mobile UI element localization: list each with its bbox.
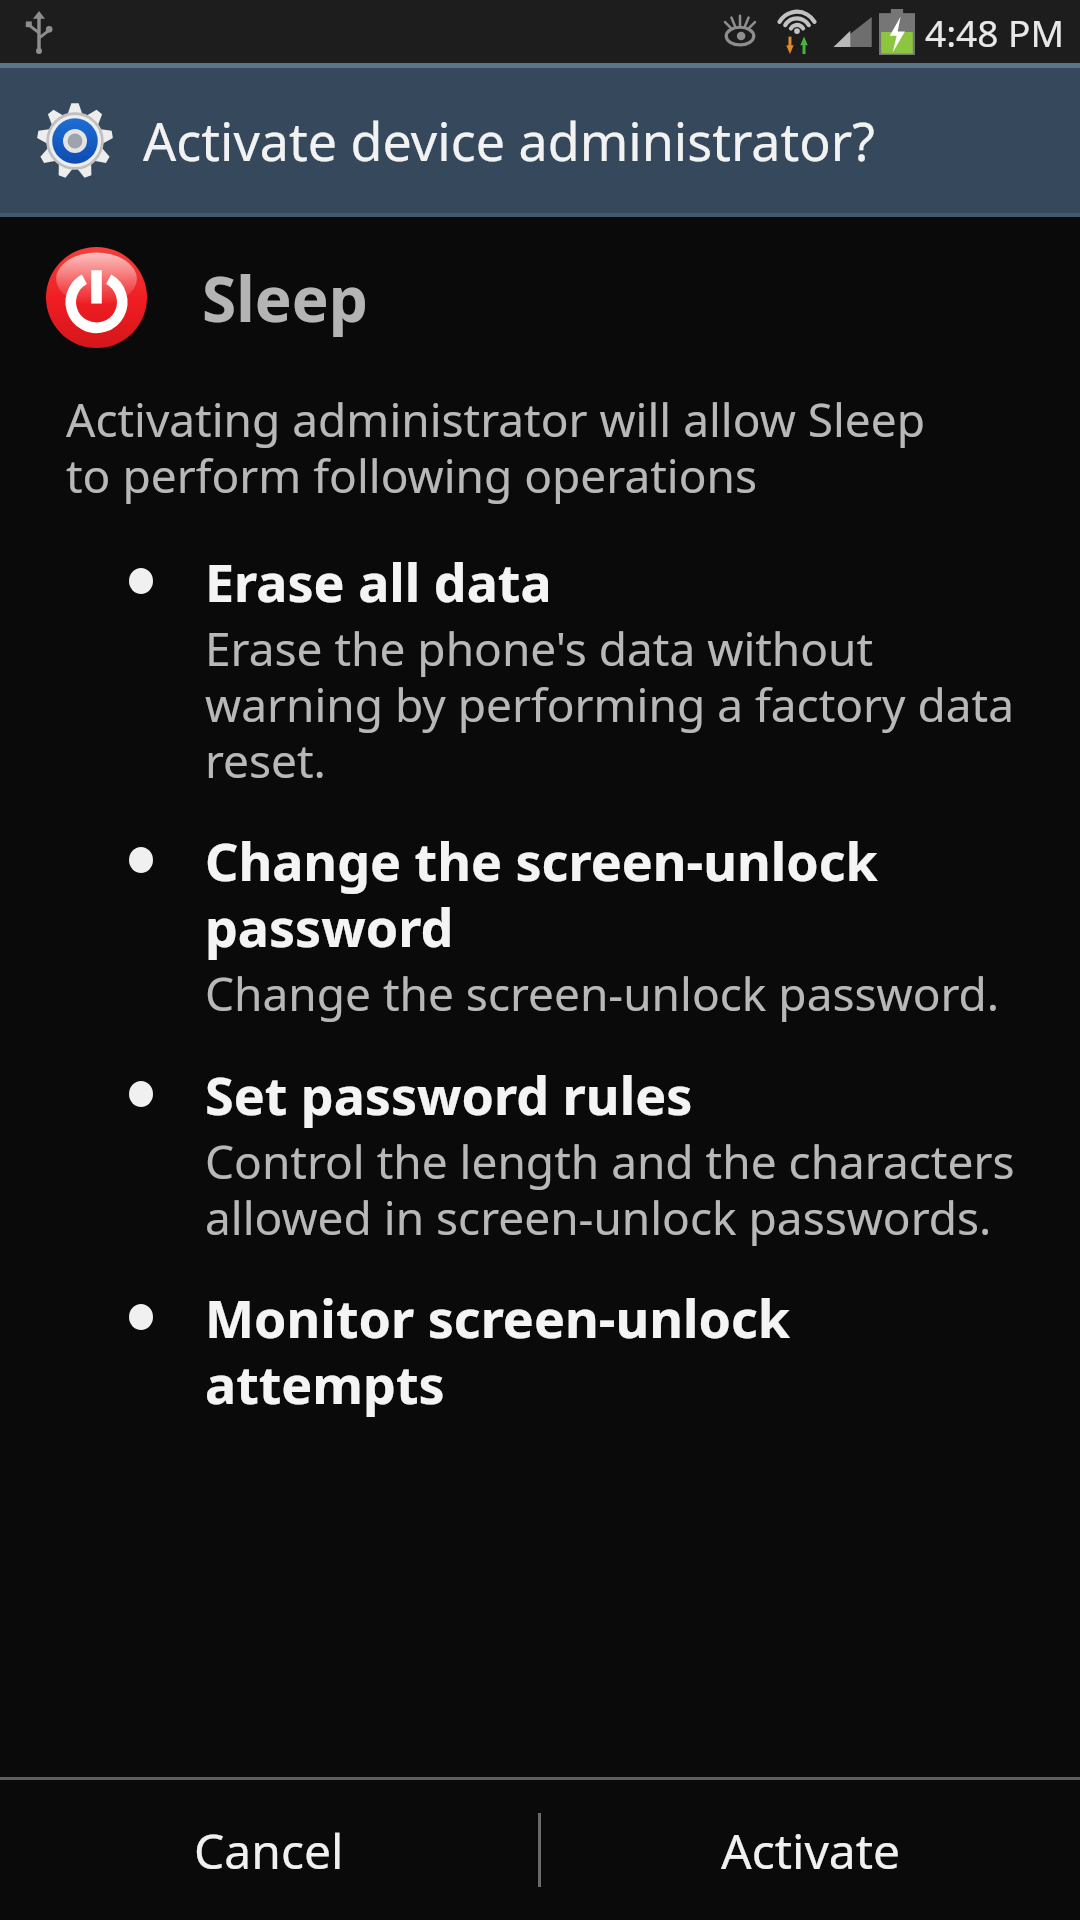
staticText: Control the length and the characters al… (205, 1130, 1040, 1248)
staticText: Activating administrator will allow Slee… (66, 388, 970, 506)
staticText: Change the screen-unlock password (205, 825, 1040, 962)
staticText: Activate device administrator? (143, 105, 875, 176)
staticText: Sleep (202, 256, 368, 340)
staticText: Cancel (194, 1818, 344, 1883)
button[interactable]: Cancel (0, 1780, 538, 1920)
button[interactable]: Activate (541, 1780, 1080, 1920)
staticText: Monitor screen-unlock attempts (205, 1282, 1040, 1419)
staticText: Erase all data (205, 546, 552, 617)
staticText: Erase the phone's data without warning b… (205, 617, 1040, 791)
staticText: 4:48 PM (925, 7, 1064, 57)
staticText: Set password rules (205, 1059, 693, 1130)
staticText: Activate (721, 1818, 901, 1883)
staticText: Change the screen-unlock password. (205, 962, 1000, 1025)
